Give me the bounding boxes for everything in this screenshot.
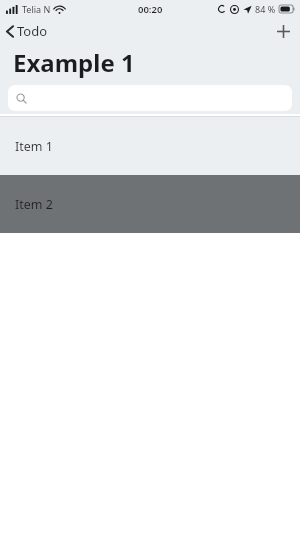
staticText: Telia N <box>22 3 51 15</box>
staticText: Example 1 <box>13 46 135 79</box>
staticText: Item 2 <box>15 196 53 213</box>
staticText: 84 % <box>255 3 276 15</box>
button[interactable] <box>8 85 292 111</box>
staticText: Item 1 <box>15 138 53 155</box>
button[interactable]: Add item <box>270 18 296 44</box>
staticText: Todo <box>17 22 48 40</box>
staticText: 00:20 <box>138 3 163 16</box>
button[interactable]: Item 1 <box>0 117 300 175</box>
button[interactable]: Todo <box>0 19 56 43</box>
button[interactable]: Item 2 <box>0 175 300 233</box>
